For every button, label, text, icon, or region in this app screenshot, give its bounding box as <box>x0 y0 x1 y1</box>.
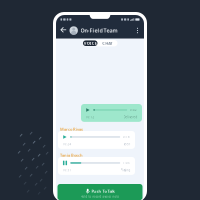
staticText: Seen <box>123 142 130 146</box>
staticText: 10:12 <box>85 115 94 119</box>
staticText: Hold to record a voice note <box>80 195 119 198</box>
staticText: 10:31 <box>62 168 71 172</box>
staticText: Delivered <box>123 115 137 119</box>
button[interactable]: CHAT <box>97 40 117 46</box>
button[interactable]: 0:18 <box>58 131 135 149</box>
staticText: 0:42 <box>130 108 137 112</box>
staticText: CHAT <box>102 40 112 46</box>
button[interactable]: 1:05 <box>58 157 135 175</box>
staticText: Playing <box>120 168 130 172</box>
staticText: On-Field Team <box>80 27 117 34</box>
button[interactable]: VOICE <box>83 40 97 46</box>
staticText: Tania Bosch <box>60 152 83 158</box>
staticText: VOICE <box>84 40 97 46</box>
staticText: 10:24 <box>62 142 71 146</box>
staticText: Marco Rivas <box>60 126 83 132</box>
button[interactable]: Back <box>60 24 69 37</box>
staticText: 1:05 <box>123 161 130 165</box>
button[interactable]: More options <box>133 24 141 37</box>
staticText: 0:18 <box>123 135 130 139</box>
staticText: Push To Talk <box>91 188 114 194</box>
button[interactable]: Push To Talk <box>57 184 142 200</box>
button[interactable]: 0:42 <box>81 104 142 122</box>
